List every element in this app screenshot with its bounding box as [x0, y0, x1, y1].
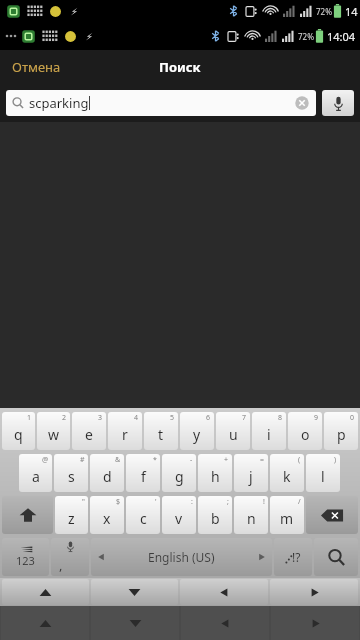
staticText: f — [141, 467, 146, 486]
button[interactable]: : — [162, 496, 196, 534]
button[interactable]: Up — [2, 579, 89, 605]
button[interactable]: - — [162, 454, 196, 492]
staticText: Поиск — [159, 58, 201, 76]
staticText: ' — [155, 497, 157, 507]
staticText: a — [32, 467, 40, 486]
button[interactable]: @ — [19, 454, 52, 492]
staticText: p — [337, 425, 346, 444]
button[interactable]: Shift — [2, 496, 53, 534]
button[interactable]: English (US) — [91, 538, 272, 576]
button[interactable]: Clear — [294, 95, 310, 111]
button[interactable]: ; — [198, 496, 232, 534]
staticText: + — [224, 455, 229, 465]
button[interactable]: ' — [126, 496, 160, 534]
button[interactable]: 4 — [108, 412, 142, 450]
button[interactable]: Left — [180, 579, 268, 605]
button[interactable]: Down — [91, 579, 178, 605]
staticText: 72% — [316, 6, 332, 17]
staticText: 3 — [98, 413, 103, 423]
staticText: 2 — [62, 413, 67, 423]
button[interactable]: 1 — [2, 412, 35, 450]
staticText: - — [190, 455, 193, 465]
staticText: h — [211, 467, 220, 486]
button[interactable]: ( — [270, 454, 304, 492]
staticText: n — [247, 509, 256, 528]
button[interactable]: Numbers and symbols — [2, 538, 49, 576]
button[interactable]: Search — [314, 538, 358, 576]
button[interactable]: 3 — [72, 412, 106, 450]
staticText: 7 — [242, 413, 247, 423]
staticText: : — [191, 497, 193, 507]
staticText: 6 — [206, 413, 211, 423]
staticText: !? — [292, 549, 301, 565]
staticText: , — [59, 556, 63, 574]
staticText: @ — [42, 455, 49, 465]
staticText: 1 — [27, 413, 32, 423]
staticText: ! — [263, 497, 265, 507]
button[interactable]: Punctuation — [274, 538, 312, 576]
button[interactable]: scparking — [6, 90, 316, 116]
staticText: 72% — [298, 31, 314, 42]
staticText: k — [283, 467, 291, 486]
button[interactable]: Отмена — [0, 54, 73, 80]
button[interactable]: Backspace — [306, 496, 358, 534]
staticText: v — [175, 509, 183, 528]
staticText: scparking — [29, 94, 89, 112]
button[interactable]: 2 — [37, 412, 70, 450]
staticText: 14:04 — [327, 29, 356, 44]
staticText: ) — [334, 455, 337, 465]
staticText: $ — [116, 497, 121, 507]
staticText: q — [14, 425, 23, 444]
staticText: Отмена — [12, 58, 61, 76]
staticText: 9 — [314, 413, 319, 423]
staticText: ; — [227, 497, 229, 507]
button[interactable]: $ — [90, 496, 124, 534]
button[interactable]: " — [55, 496, 88, 534]
button[interactable]: Right — [270, 579, 358, 605]
staticText: e — [85, 425, 93, 444]
button[interactable]: + — [198, 454, 232, 492]
staticText: m — [280, 509, 294, 528]
staticText: r — [122, 425, 128, 444]
staticText: w — [48, 425, 60, 444]
button[interactable]: 5 — [144, 412, 178, 450]
staticText: & — [115, 455, 121, 465]
button[interactable]: 7 — [216, 412, 250, 450]
staticText: u — [229, 425, 238, 444]
staticText: 123 — [16, 553, 35, 568]
staticText: b — [211, 509, 220, 528]
staticText: z — [68, 509, 75, 528]
button[interactable]: Voice search — [322, 90, 354, 116]
button[interactable]: Right — [271, 606, 359, 640]
button[interactable]: & — [90, 454, 124, 492]
button[interactable]: ! — [234, 496, 268, 534]
button[interactable]: / — [270, 496, 304, 534]
staticText: / — [298, 497, 301, 507]
staticText: 5 — [170, 413, 175, 423]
button[interactable]: = — [234, 454, 268, 492]
button[interactable]: 9 — [288, 412, 322, 450]
staticText: i — [267, 425, 271, 444]
button[interactable]: Down — [91, 606, 179, 640]
staticText: s — [68, 467, 75, 486]
staticText: o — [301, 425, 310, 444]
staticText: = — [260, 455, 265, 465]
button[interactable]: * — [126, 454, 160, 492]
staticText: " — [82, 497, 85, 507]
button[interactable]: ) — [306, 454, 340, 492]
staticText: 0 — [350, 413, 355, 423]
staticText: 8 — [278, 413, 283, 423]
button[interactable]: Comma and voice input — [51, 538, 89, 576]
button[interactable]: Up — [1, 606, 89, 640]
staticText: j — [249, 467, 253, 486]
staticText: y — [193, 425, 201, 444]
button[interactable]: # — [54, 454, 88, 492]
staticText: l — [321, 467, 325, 486]
staticText: t — [158, 425, 164, 444]
button[interactable]: Left — [181, 606, 269, 640]
button[interactable]: 8 — [252, 412, 286, 450]
staticText: ( — [298, 455, 301, 465]
button[interactable]: 6 — [180, 412, 214, 450]
button[interactable]: 0 — [324, 412, 358, 450]
staticText: 4 — [134, 413, 139, 423]
